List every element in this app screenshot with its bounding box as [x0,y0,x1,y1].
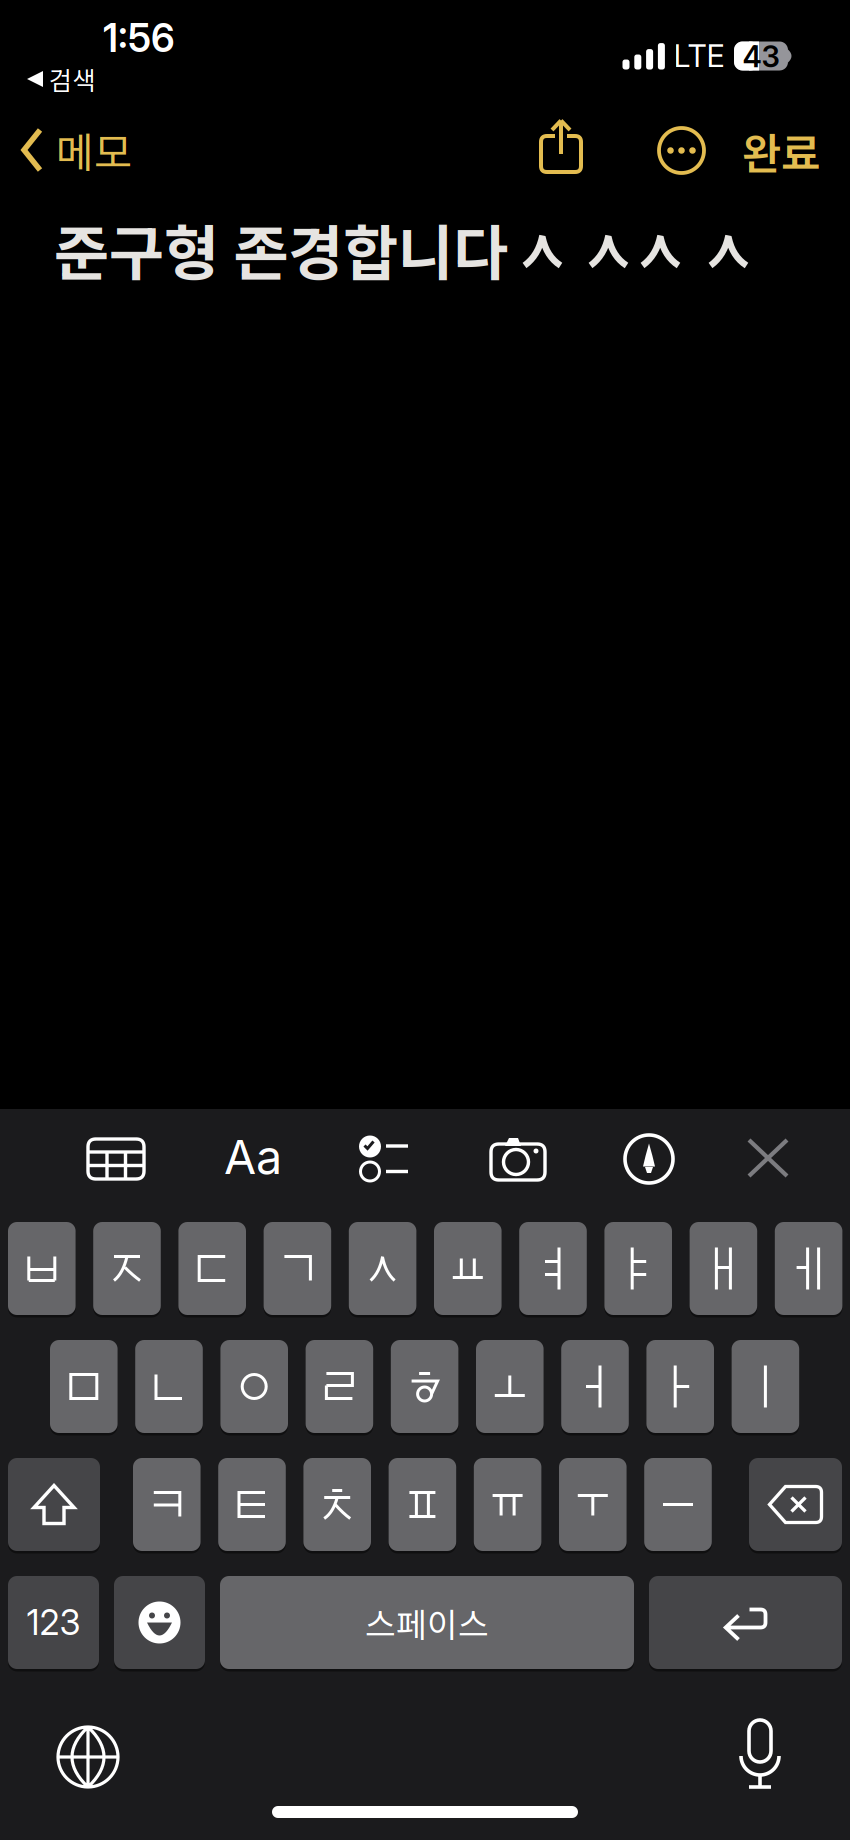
button[interactable] [8,1222,76,1315]
button[interactable] [559,1458,627,1551]
button[interactable]: 검색으로 돌아가기 [27,61,95,97]
staticText: LTE [673,37,724,74]
button[interactable] [218,1458,286,1551]
button[interactable]: 지우기 [749,1458,842,1551]
button[interactable]: 마크업 [625,1135,673,1183]
staticText: 1:56 [103,15,175,61]
staticText: 메모 [56,120,132,180]
button[interactable] [264,1222,331,1315]
button[interactable]: 리턴 [649,1576,842,1669]
staticText: Aa [224,1129,282,1185]
button[interactable]: 서식 [224,1129,282,1185]
button[interactable] [690,1222,757,1315]
button[interactable] [775,1222,842,1315]
button[interactable]: 숫자 [8,1576,99,1669]
button[interactable]: 카메라 [489,1136,547,1182]
button[interactable]: 메모 [20,120,132,180]
button[interactable] [178,1222,246,1315]
button[interactable]: 추가 작업 [653,122,709,178]
button[interactable] [474,1458,541,1551]
button[interactable] [646,1340,714,1433]
button[interactable]: 다음 키보드 [56,1725,120,1789]
button[interactable] [519,1222,587,1315]
button[interactable] [434,1222,502,1315]
button[interactable] [604,1222,672,1315]
button[interactable] [389,1458,456,1551]
button[interactable] [561,1340,629,1433]
button[interactable] [220,1340,288,1433]
button[interactable] [303,1458,371,1551]
staticText: 완료 [742,120,820,182]
button[interactable] [349,1222,416,1315]
staticText: 준구형 존경합니다 [54,206,508,292]
button[interactable] [644,1458,712,1551]
button[interactable]: 이모티콘 [114,1576,205,1669]
staticText: 43 [742,39,779,74]
button[interactable] [135,1340,203,1433]
staticText: 검색 [49,61,95,97]
button[interactable]: 시프트 [8,1458,100,1551]
button[interactable] [93,1222,161,1315]
button[interactable]: 받아쓰기 [735,1718,785,1794]
button[interactable] [133,1458,201,1551]
staticText: 스페이스 [365,1598,489,1647]
button[interactable] [306,1340,373,1433]
button[interactable] [732,1340,799,1433]
button[interactable]: 공유 [534,114,590,178]
button[interactable]: 스페이스 [220,1576,634,1669]
button[interactable]: 키보드 닫기 [747,1138,789,1178]
button[interactable]: 체크리스트 [359,1135,409,1182]
button[interactable]: 완료 [742,120,820,182]
button[interactable] [50,1340,118,1433]
staticText: 123 [26,1601,80,1643]
button[interactable] [476,1340,544,1433]
button[interactable] [391,1340,458,1433]
button[interactable]: 표 [84,1131,148,1187]
